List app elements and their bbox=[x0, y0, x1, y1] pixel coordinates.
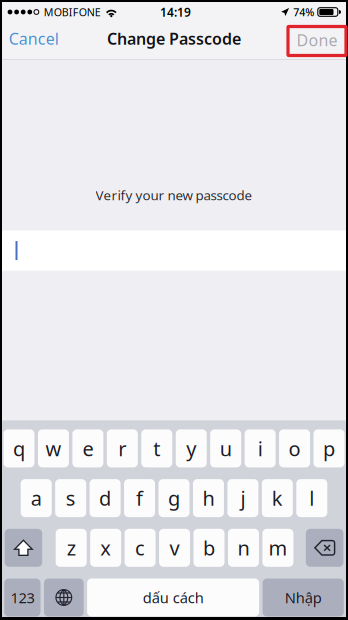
button[interactable]: Nhập bbox=[263, 578, 344, 616]
staticText: q bbox=[13, 435, 25, 462]
button[interactable]: Done bbox=[288, 26, 346, 55]
button[interactable]: t bbox=[141, 429, 172, 467]
staticText: u bbox=[220, 435, 232, 462]
staticText: s bbox=[66, 485, 76, 511]
staticText: Nhập bbox=[285, 588, 322, 607]
staticText: 14:19 bbox=[160, 4, 191, 20]
button[interactable]: Cancel bbox=[2, 22, 69, 59]
staticText: x bbox=[100, 534, 111, 561]
staticText: y bbox=[186, 435, 196, 462]
staticText: Done bbox=[296, 29, 337, 51]
button[interactable]: s bbox=[55, 479, 86, 517]
button[interactable]: dấu cách bbox=[87, 578, 259, 616]
button[interactable]: p bbox=[313, 429, 344, 467]
staticText: t bbox=[153, 435, 160, 462]
staticText: d bbox=[99, 485, 111, 511]
button[interactable]: e bbox=[72, 429, 103, 467]
staticText: p bbox=[323, 435, 335, 462]
staticText: b bbox=[203, 534, 215, 561]
button[interactable]: h bbox=[193, 479, 224, 517]
staticText: n bbox=[237, 534, 249, 561]
button[interactable]: m bbox=[262, 529, 293, 567]
staticText: z bbox=[67, 534, 76, 561]
button[interactable]: y bbox=[176, 429, 207, 467]
button[interactable]: u bbox=[210, 429, 241, 467]
button[interactable]: 123 bbox=[4, 578, 40, 616]
staticText: Verify your new passcode bbox=[95, 186, 252, 204]
button[interactable]: l bbox=[296, 479, 327, 517]
button[interactable]: v bbox=[159, 529, 190, 567]
button[interactable]: b bbox=[193, 529, 224, 567]
button[interactable]: n bbox=[228, 529, 259, 567]
button[interactable]: z bbox=[56, 529, 87, 567]
button[interactable]: o bbox=[279, 429, 310, 467]
staticText: Change Passcode bbox=[107, 28, 241, 49]
staticText: r bbox=[118, 435, 126, 462]
staticText: Cancel bbox=[9, 28, 59, 49]
button[interactable]: Shift bbox=[5, 529, 42, 567]
button[interactable]: x bbox=[90, 529, 121, 567]
staticText: h bbox=[202, 485, 214, 511]
staticText: k bbox=[272, 485, 283, 511]
button[interactable]: k bbox=[262, 479, 293, 517]
staticText: j bbox=[240, 485, 245, 511]
button[interactable]: w bbox=[38, 429, 69, 467]
button[interactable]: d bbox=[90, 479, 121, 517]
staticText: v bbox=[170, 534, 180, 561]
staticText: c bbox=[135, 534, 145, 561]
button[interactable]: i bbox=[245, 429, 276, 467]
button[interactable]: q bbox=[3, 429, 34, 467]
button[interactable]: r bbox=[107, 429, 138, 467]
button[interactable]: j bbox=[227, 479, 258, 517]
button[interactable]: Delete bbox=[306, 529, 343, 567]
button[interactable]: f bbox=[124, 479, 155, 517]
button[interactable]: Next keyboard bbox=[44, 578, 84, 616]
staticText: w bbox=[45, 435, 61, 462]
staticText: f bbox=[136, 485, 143, 511]
staticText: e bbox=[82, 435, 93, 462]
button[interactable]: c bbox=[125, 529, 156, 567]
staticText: i bbox=[258, 435, 263, 462]
staticText: l bbox=[309, 485, 314, 511]
staticText: g bbox=[168, 485, 180, 511]
button[interactable]: a bbox=[21, 479, 52, 517]
staticText: 123 bbox=[10, 588, 34, 607]
staticText: m bbox=[268, 534, 287, 561]
staticText: 74% bbox=[293, 5, 314, 19]
staticText: MOBIFONE bbox=[44, 5, 101, 19]
staticText: o bbox=[289, 435, 301, 462]
staticText: dấu cách bbox=[143, 588, 204, 607]
button[interactable]: g bbox=[158, 479, 189, 517]
staticText: a bbox=[31, 485, 42, 511]
